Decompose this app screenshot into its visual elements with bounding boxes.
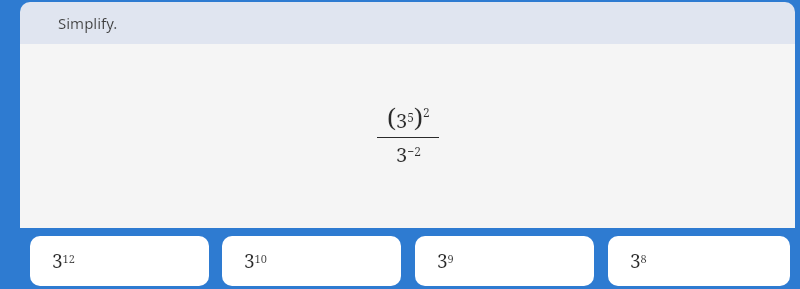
staticText: 38 [630, 248, 647, 274]
staticText: 312 [52, 248, 75, 274]
staticText: 2 [423, 104, 430, 120]
staticText: ( [387, 99, 396, 134]
staticText: Simplify. [58, 13, 118, 33]
staticText: ) [414, 99, 423, 134]
button[interactable]: 312 [30, 236, 209, 286]
button[interactable]: 38 [608, 236, 790, 286]
staticText: 310 [244, 248, 267, 274]
button[interactable]: 310 [222, 236, 401, 286]
staticText: 3−2 [396, 141, 421, 168]
staticText: 39 [437, 248, 454, 274]
staticText: 35 [396, 107, 414, 134]
button[interactable]: 39 [415, 236, 594, 286]
